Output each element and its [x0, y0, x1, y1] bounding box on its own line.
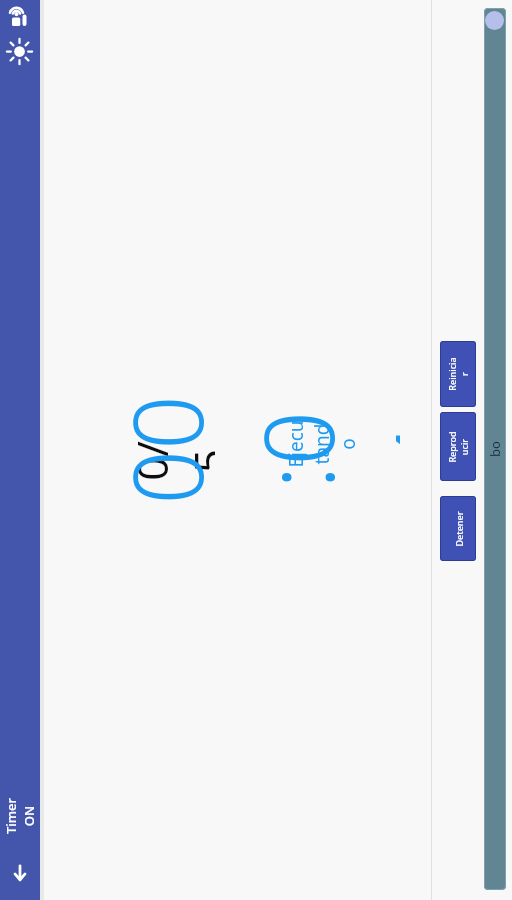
button[interactable]: Ambos	[484, 8, 506, 890]
button[interactable]: Brightness	[7, 39, 32, 64]
staticText: Timer ON	[2, 796, 38, 836]
button[interactable]: Cast to device	[7, 7, 32, 32]
staticText: Reiniciar	[446, 356, 470, 392]
button[interactable]: Scroll down	[8, 861, 32, 885]
staticText: 0/5	[123, 430, 215, 492]
staticText: Ambos	[484, 438, 506, 460]
button[interactable]: Detener	[440, 496, 476, 561]
button[interactable]: Timer ON	[0, 776, 40, 856]
staticText: 00:04	[100, 392, 400, 508]
staticText: Ejecutando	[283, 420, 361, 468]
button[interactable]: Reiniciar	[440, 341, 476, 407]
staticText: Detener	[452, 511, 464, 546]
button[interactable]: Volume slider thumb	[483, 9, 505, 31]
button[interactable]: Reproducir	[440, 412, 476, 481]
staticText: Reproducir	[446, 429, 470, 465]
